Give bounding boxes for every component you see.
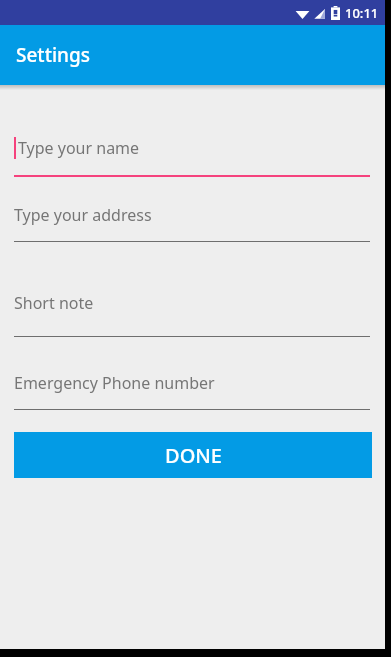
button[interactable]: Short note (0, 292, 385, 337)
staticText: Short note (14, 292, 94, 314)
staticText: DONE (165, 442, 222, 469)
button[interactable]: Type your name (0, 137, 385, 177)
button[interactable]: Type your address (0, 204, 385, 242)
staticText: Type your address (14, 204, 152, 226)
button[interactable]: DONE (14, 432, 372, 478)
staticText: Settings (16, 42, 90, 68)
staticText: Type your name (18, 137, 140, 159)
staticText: 10:11 (345, 4, 379, 22)
staticText: Emergency Phone number (14, 372, 215, 394)
button[interactable]: Emergency Phone number (0, 372, 385, 410)
